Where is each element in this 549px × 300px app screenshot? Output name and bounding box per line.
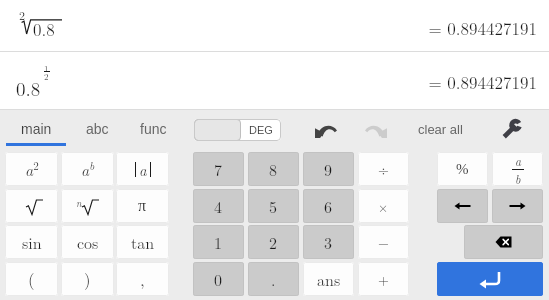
staticText: abc	[86, 121, 109, 137]
button[interactable]: Redo	[358, 114, 394, 144]
button[interactable]: Enter	[437, 262, 543, 296]
button[interactable]: a2	[5, 152, 58, 186]
button[interactable]: sin	[5, 225, 58, 259]
staticText: (	[28, 267, 35, 291]
staticText: 0	[214, 268, 223, 291]
staticText: .	[271, 268, 276, 291]
staticText: −	[378, 232, 389, 252]
button[interactable]: tan	[116, 225, 169, 259]
button[interactable]: ×	[358, 189, 409, 223]
staticText: ans	[317, 268, 341, 291]
staticText: ÷	[378, 159, 389, 179]
staticText: 0.8	[16, 75, 41, 102]
staticText: 2	[269, 231, 278, 254]
button[interactable]: clear all	[408, 114, 472, 144]
staticText: 8	[269, 158, 278, 181]
button[interactable]: 9	[303, 152, 354, 186]
staticText: tan	[131, 231, 155, 254]
button[interactable]: abc	[69, 110, 125, 146]
staticText: 9	[324, 158, 333, 181]
button[interactable]: 7	[193, 152, 244, 186]
staticText: b	[515, 170, 521, 186]
staticText: DEG	[249, 124, 273, 136]
staticText: a	[515, 152, 522, 169]
button[interactable]: ÷	[358, 152, 409, 186]
button[interactable]: nth root	[61, 189, 114, 223]
button[interactable]: cos	[61, 225, 114, 259]
staticText: = 0.894427191	[0, 70, 537, 94]
button[interactable]: +	[358, 262, 409, 296]
staticText: 0.8	[33, 17, 55, 41]
button[interactable]: 8	[248, 152, 299, 186]
button[interactable]: func	[125, 110, 181, 146]
button[interactable]: .	[248, 262, 299, 296]
staticText: π	[138, 197, 147, 215]
staticText: )	[84, 267, 91, 291]
staticText: 7	[214, 158, 223, 181]
staticText: 1	[214, 231, 223, 254]
button[interactable]: Angle unit: DEG	[194, 119, 281, 141]
staticText: ab	[81, 158, 95, 181]
staticText: a2	[25, 158, 39, 181]
staticText: sin	[22, 231, 42, 254]
button[interactable]: ab	[61, 152, 114, 186]
button[interactable]: ans	[303, 262, 354, 296]
staticText: 2	[44, 70, 49, 83]
staticText: func	[140, 121, 167, 137]
button[interactable]: (	[5, 262, 58, 296]
button[interactable]: 1	[193, 225, 244, 259]
button[interactable]: absolute value	[116, 152, 169, 186]
staticText: clear all	[418, 122, 463, 137]
button[interactable]: 4	[193, 189, 244, 223]
staticText: 5	[269, 195, 278, 218]
button[interactable]: π	[116, 189, 169, 223]
button[interactable]: ,	[116, 262, 169, 296]
staticText: 1	[44, 62, 49, 75]
button[interactable]: 5	[248, 189, 299, 223]
button[interactable]: 6	[303, 189, 354, 223]
button[interactable]: Left	[437, 189, 488, 223]
staticText: ×	[378, 197, 389, 215]
button[interactable]: Right	[492, 189, 543, 223]
button[interactable]: Backspace	[464, 225, 543, 259]
staticText: n	[76, 196, 82, 210]
button[interactable]: )	[61, 262, 114, 296]
staticText: +	[378, 269, 389, 289]
staticText: 3	[324, 231, 333, 254]
button[interactable]: Undo	[308, 114, 344, 144]
staticText: = 0.894427191	[0, 16, 537, 40]
staticText: main	[21, 121, 52, 137]
button[interactable]: main	[6, 110, 66, 146]
button[interactable]: 0	[193, 262, 244, 296]
staticText: ,	[140, 267, 145, 291]
staticText: 6	[324, 195, 333, 218]
staticText: a	[139, 159, 147, 180]
button[interactable]: %	[437, 152, 488, 186]
staticText: 4	[214, 195, 223, 218]
staticText: %	[456, 161, 469, 178]
staticText: 2	[19, 6, 26, 23]
button[interactable]: −	[358, 225, 409, 259]
button[interactable]: square root	[5, 189, 58, 223]
button[interactable]: 3	[303, 225, 354, 259]
button[interactable]: Settings	[496, 114, 528, 144]
button[interactable]: a	[492, 152, 543, 186]
button[interactable]: 2	[248, 225, 299, 259]
staticText: cos	[77, 231, 99, 254]
